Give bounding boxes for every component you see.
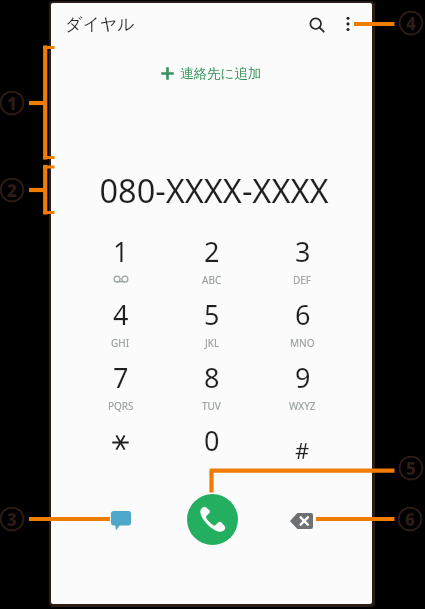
staticText: DEF [293, 273, 312, 287]
button[interactable]: Backspace [284, 503, 319, 538]
button[interactable] [75, 414, 166, 477]
button[interactable]: 8 [166, 351, 257, 414]
button[interactable]: Search [297, 5, 337, 45]
button[interactable]: 6 [257, 288, 348, 351]
staticText: JKL [205, 336, 220, 350]
staticText: # [295, 435, 310, 465]
button[interactable]: # [257, 414, 348, 477]
button[interactable]: 2 [166, 225, 257, 288]
staticText: 0 [204, 422, 220, 459]
staticText: 4 [113, 296, 129, 333]
staticText: TUV [202, 399, 221, 413]
staticText: PQRS [108, 399, 134, 413]
staticText: 9 [295, 359, 311, 396]
staticText: 4 [406, 12, 416, 35]
staticText: 1 [7, 92, 17, 115]
staticText: WXYZ [289, 399, 316, 413]
staticText: 2 [204, 233, 220, 270]
staticText: 080-XXXX-XXXX [99, 168, 329, 212]
staticText: ABC [202, 273, 222, 287]
button[interactable]: 1 [75, 225, 166, 288]
staticText: 6 [405, 508, 415, 531]
staticText: 6 [295, 296, 311, 333]
button[interactable]: 5 [166, 288, 257, 351]
button[interactable]: 7 [75, 351, 166, 414]
button[interactable]: Call [187, 494, 238, 545]
staticText: 3 [7, 508, 17, 531]
staticText: 1 [113, 233, 129, 270]
button[interactable]: 4 [75, 288, 166, 351]
staticText: 5 [204, 296, 220, 333]
staticText: 2 [7, 179, 17, 202]
staticText: 8 [204, 359, 220, 396]
button[interactable]: Messages [103, 503, 138, 538]
staticText: 7 [113, 359, 129, 396]
button[interactable]: 3 [257, 225, 348, 288]
button[interactable]: ダイヤル [65, 14, 135, 35]
button[interactable]: 0 [166, 414, 257, 477]
staticText: MNO [290, 336, 315, 350]
staticText: 連絡先に追加 [180, 65, 262, 82]
staticText: GHI [111, 336, 130, 350]
button[interactable]: 9 [257, 351, 348, 414]
button[interactable]: 連絡先に追加 [161, 65, 262, 82]
staticText: ダイヤル [65, 14, 135, 35]
staticText: 3 [295, 233, 311, 270]
staticText: 5 [406, 457, 416, 480]
button[interactable]: More options [329, 6, 366, 43]
